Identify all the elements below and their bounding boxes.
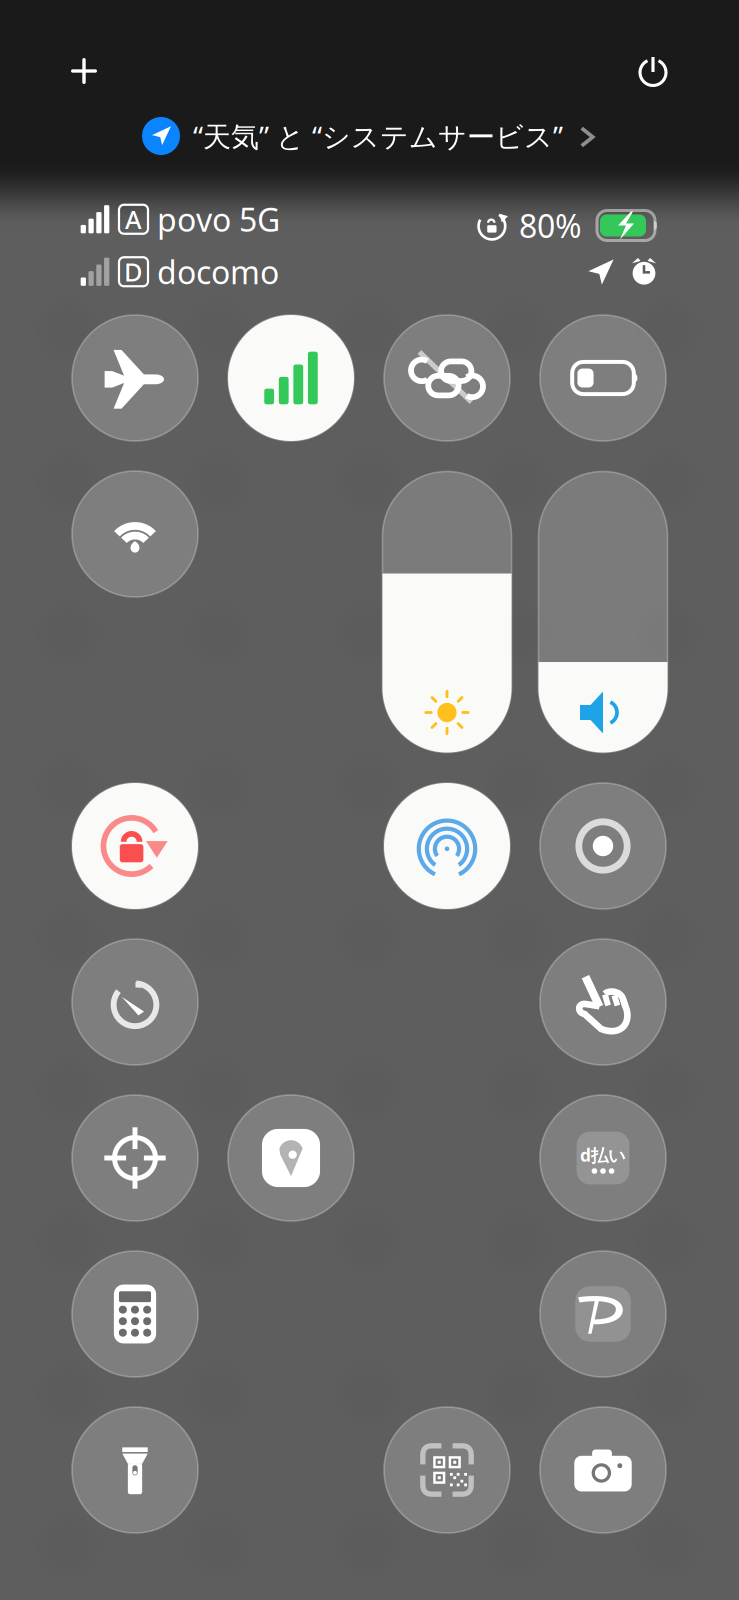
button[interactable]: Rotation Lock [72,783,198,909]
staticText: d払い [580,1143,626,1167]
button[interactable]: PayPay [540,1251,666,1377]
button[interactable]: Power off [616,34,690,108]
button[interactable]: Screen Mirroring [384,783,510,909]
button[interactable]: Cellular Data [228,315,354,441]
staticText: 80% [519,204,582,247]
button[interactable]: Wi-Fi [72,471,198,597]
button[interactable]: Code Scanner [384,1407,510,1533]
button[interactable]: Maps [228,1095,354,1221]
button[interactable]: Add a control [47,34,121,108]
button[interactable]: Camera [540,1407,666,1533]
staticText: povo 5G [157,198,280,240]
staticText: “天気” と “システムサービス” [193,117,563,155]
button[interactable]: Low Power Mode [540,315,666,441]
button[interactable]: Screen Record [540,783,666,909]
button[interactable]: Calculator [72,1251,198,1377]
button[interactable]: Airplane Mode [72,315,198,441]
button[interactable]: “天気” と “システムサービス” [142,108,598,164]
button[interactable]: Flashlight [72,1407,198,1533]
button[interactable]: AssistiveTouch [540,939,666,1065]
staticText: D [124,255,143,288]
button[interactable]: Personal Hotspot [384,315,510,441]
button[interactable]: Timer [72,939,198,1065]
staticText: docomo [157,250,279,293]
button[interactable]: Brightness [382,471,511,752]
button[interactable]: Accessibility Shortcut [72,1095,198,1221]
button[interactable]: d払い [540,1095,666,1221]
staticText: A [125,202,142,236]
button[interactable]: Volume [538,471,667,752]
